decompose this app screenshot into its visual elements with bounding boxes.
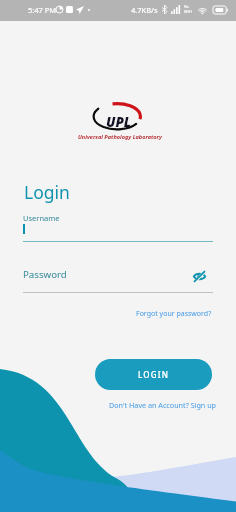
staticText: 5:47 PM <box>28 5 57 15</box>
staticText: 4.7KB/s <box>131 5 158 15</box>
staticText: Universal Pathology Laboratory <box>78 133 162 141</box>
staticText: Username <box>23 213 60 223</box>
staticText: Password <box>23 268 67 281</box>
staticText: Vo WiFi <box>184 4 192 14</box>
staticText: LOGIN <box>138 369 170 380</box>
button[interactable]: LOGIN <box>95 359 212 390</box>
button[interactable]: Show password <box>190 267 208 285</box>
staticText: UPL <box>106 113 131 131</box>
button[interactable]: Forgot your password? <box>136 309 212 319</box>
button[interactable]: Don't Have an Account? Sign up <box>109 400 217 410</box>
staticText: Login <box>24 180 70 204</box>
